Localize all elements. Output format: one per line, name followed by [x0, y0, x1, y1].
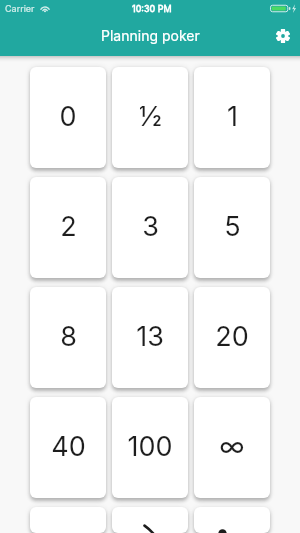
staticText: 0: [59, 100, 77, 133]
staticText: 20: [215, 320, 249, 353]
button[interactable]: [30, 507, 106, 533]
staticText: 5: [224, 210, 241, 243]
button[interactable]: 5: [194, 177, 270, 278]
button[interactable]: 20: [194, 287, 270, 388]
button[interactable]: ∞: [194, 397, 270, 498]
button[interactable]: 2: [30, 177, 106, 278]
staticText: 100: [127, 430, 173, 463]
staticText: 8: [60, 320, 77, 353]
staticText: ½: [139, 100, 162, 133]
button[interactable]: 3: [112, 177, 188, 278]
button[interactable]: [112, 507, 188, 533]
button[interactable]: 8: [30, 287, 106, 388]
button[interactable]: Settings: [268, 21, 298, 51]
button[interactable]: 40: [30, 397, 106, 498]
button[interactable]: 100: [112, 397, 188, 498]
staticText: ∞: [219, 430, 245, 463]
staticText: 13: [136, 320, 164, 353]
staticText: Carrier: [5, 3, 35, 14]
button[interactable]: 13: [112, 287, 188, 388]
staticText: 40: [51, 430, 86, 463]
button[interactable]: 1: [194, 67, 270, 168]
staticText: Planning poker: [101, 27, 200, 44]
button[interactable]: 0: [30, 67, 106, 168]
button[interactable]: ½: [112, 67, 188, 168]
staticText: 3: [142, 210, 159, 243]
staticText: 10:30 PM: [132, 3, 172, 14]
staticText: 1: [227, 100, 238, 133]
staticText: 2: [60, 210, 77, 243]
button[interactable]: [194, 507, 270, 533]
